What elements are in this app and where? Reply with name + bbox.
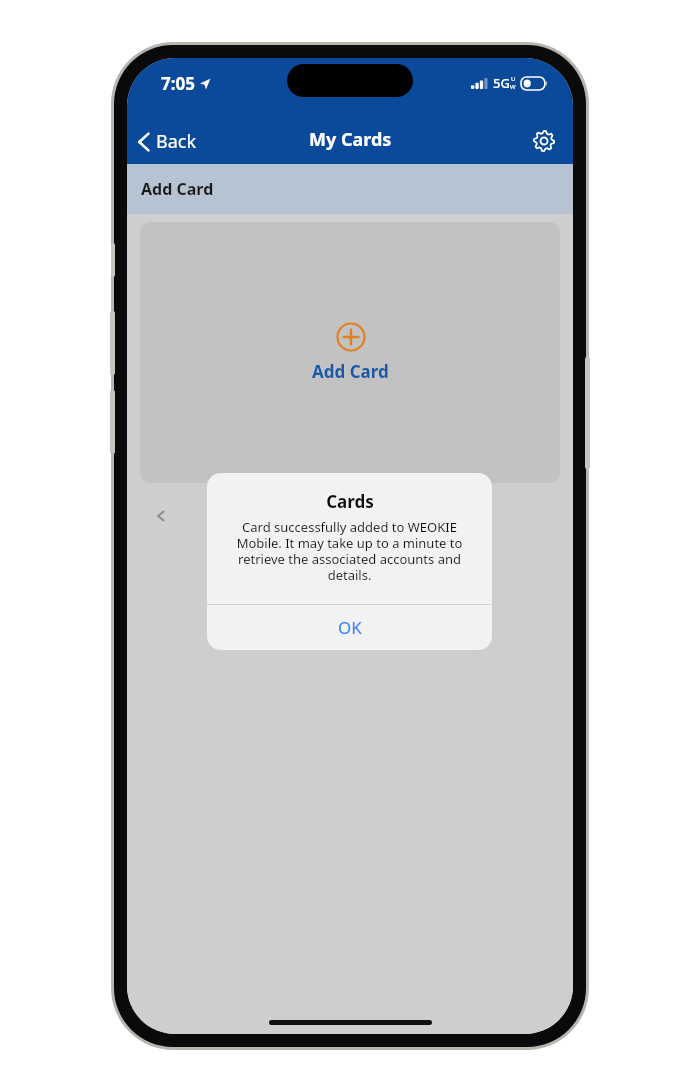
staticText: Back xyxy=(156,129,197,154)
staticText: 5G xyxy=(493,74,510,92)
staticText: U xyxy=(511,75,516,83)
staticText: Cards xyxy=(326,490,374,513)
button[interactable]: Settings xyxy=(527,124,561,158)
staticText: Add Card xyxy=(141,178,214,200)
staticText: W xyxy=(510,83,516,91)
staticText: OK xyxy=(338,616,362,639)
staticText: Card successfully added to WEOKIE Mobile… xyxy=(223,518,476,583)
staticText: My Cards xyxy=(309,127,392,152)
button[interactable]: Back xyxy=(137,129,197,154)
button[interactable]: Add Card xyxy=(140,222,560,483)
button[interactable]: OK xyxy=(207,605,492,650)
staticText: 7:05 xyxy=(161,72,195,95)
staticText: Add Card xyxy=(312,360,389,383)
button[interactable]: Previous card xyxy=(149,504,173,528)
